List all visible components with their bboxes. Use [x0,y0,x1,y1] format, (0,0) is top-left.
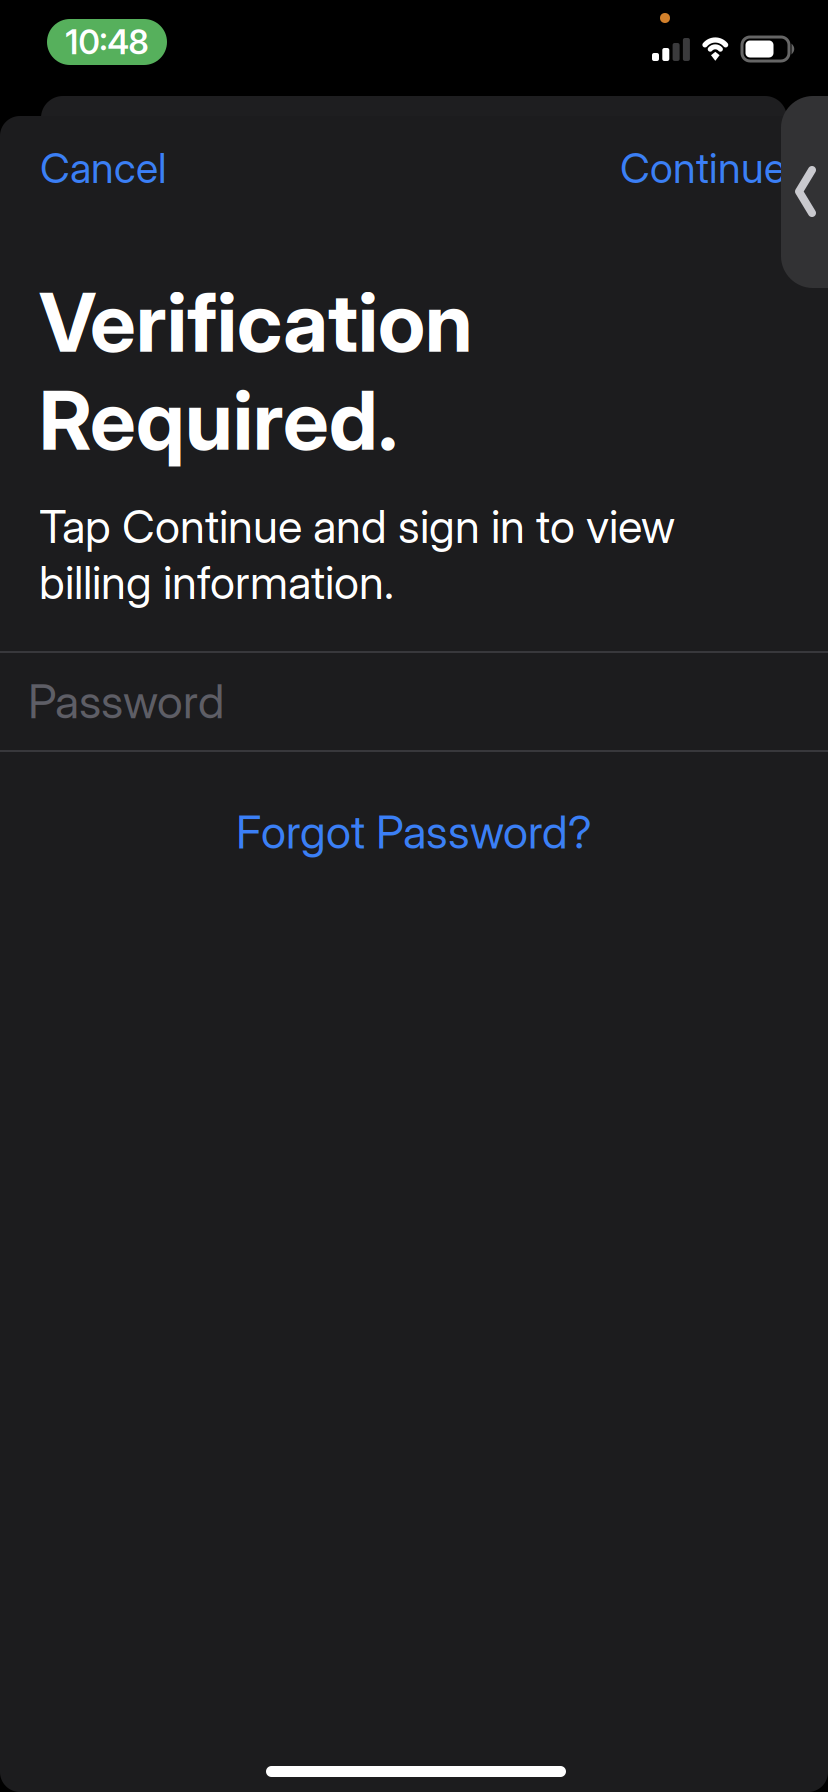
staticText: Forgot Password? [236,805,592,859]
button[interactable]: Continue [580,124,828,212]
button[interactable]: Back to previous app [781,96,828,288]
staticText: Required. [39,371,398,469]
staticText: Tap Continue and sign in to view [39,499,675,554]
staticText: Continue [620,143,786,193]
staticText: Password [28,673,224,729]
staticText: billing information. [39,555,394,610]
staticText: Cancel [40,143,167,193]
staticText: Verification [39,273,473,371]
staticText: 10:48 [65,22,148,62]
button[interactable]: Cancel [0,124,232,212]
button[interactable]: Password [0,651,828,752]
button[interactable]: Forgot Password? [0,784,828,880]
